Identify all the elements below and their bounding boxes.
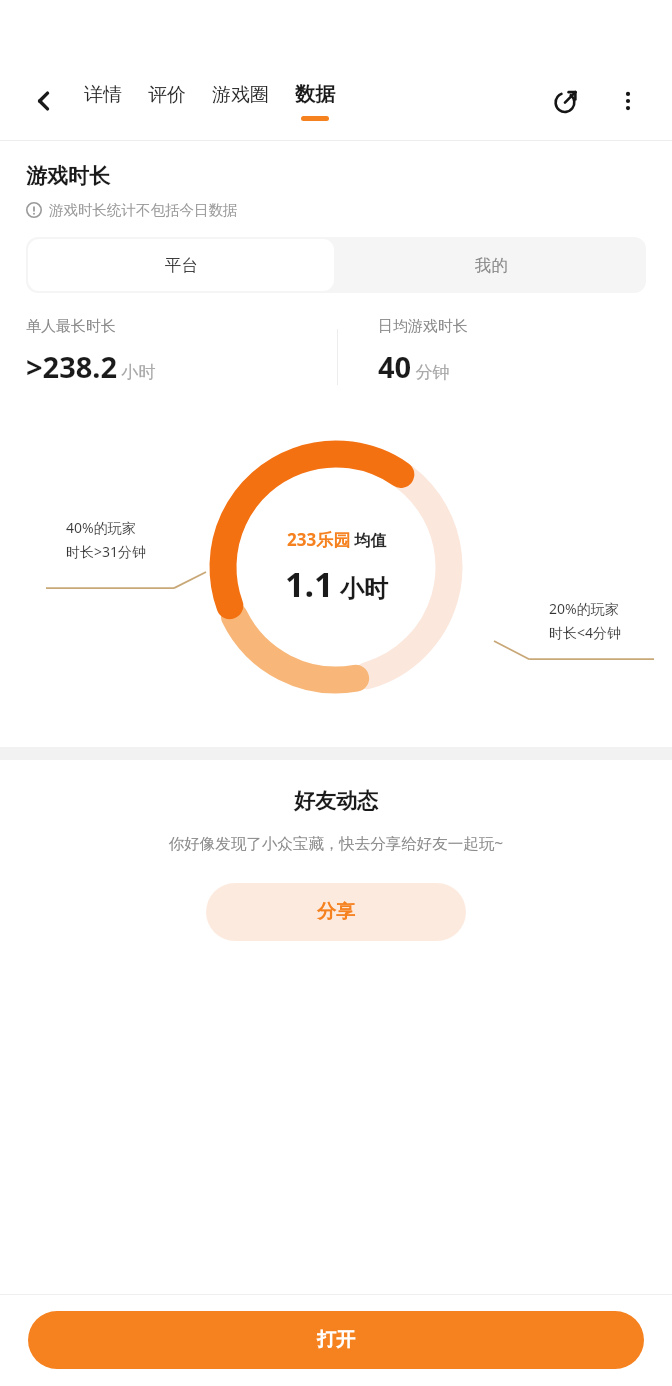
staticText: 数据 [295, 82, 335, 107]
staticText: 你好像发现了小众宝藏，快去分享给好友一起玩~ [0, 832, 672, 853]
staticText: 时长<4分钟 [549, 623, 622, 642]
staticText: 我的 [475, 255, 508, 276]
button[interactable]: 打开 [28, 1311, 644, 1369]
staticText: 打开 [317, 1328, 355, 1352]
staticText: 分享 [317, 900, 355, 924]
staticText: 平台 [165, 255, 198, 276]
staticText: 好友动态 [0, 788, 672, 814]
staticText: 游戏时长统计不包括今日数据 [49, 201, 238, 219]
button[interactable]: 评价 [146, 79, 188, 125]
staticText: 日均游戏时长 [378, 317, 468, 336]
button[interactable]: 详情 [82, 79, 124, 125]
staticText: 20%的玩家 [549, 599, 619, 618]
staticText: 40%的玩家 [66, 518, 136, 537]
staticText: 233乐园 均值 [287, 528, 387, 551]
button[interactable]: Share [546, 81, 586, 121]
staticText: 游戏时长 [26, 163, 110, 189]
staticText: >238.2 小时 [26, 347, 156, 386]
button[interactable]: 数据 [293, 78, 337, 125]
staticText: 1.1 小时 [285, 561, 388, 607]
button[interactable]: 我的 [336, 237, 646, 293]
staticText: 时长>31分钟 [66, 542, 147, 561]
staticText: 游戏圈 [212, 83, 269, 107]
button[interactable]: 平台 [28, 239, 334, 291]
button[interactable]: Back [26, 83, 62, 119]
button[interactable]: 游戏圈 [210, 79, 271, 125]
button[interactable]: More options [608, 81, 648, 121]
staticText: 单人最长时长 [26, 317, 116, 336]
staticText: 详情 [84, 83, 122, 107]
staticText: 40 分钟 [378, 347, 450, 386]
staticText: 评价 [148, 83, 186, 107]
button[interactable]: 分享 [206, 883, 466, 941]
